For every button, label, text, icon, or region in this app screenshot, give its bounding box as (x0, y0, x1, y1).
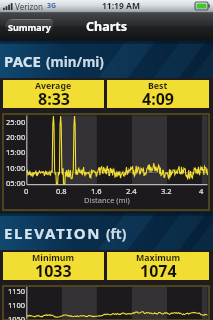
staticText: 3.2 (161, 186, 172, 196)
staticText: 1074 (140, 260, 177, 278)
staticText: 15:00 (6, 147, 26, 157)
staticText: 1033 (35, 260, 72, 278)
staticText: Charts (86, 18, 127, 35)
staticText: 4:09 (142, 88, 174, 106)
button[interactable]: Best (107, 80, 209, 108)
staticText: 10:00 (6, 163, 26, 173)
staticText: 8:33 (38, 88, 70, 106)
staticText: Summary (8, 21, 51, 33)
staticText: Distance (mi) (84, 195, 130, 205)
staticText: ELEVATION (4, 223, 102, 243)
staticText: Best (148, 80, 168, 91)
staticText: 3G (47, 1, 57, 11)
staticText: 1.6 (91, 186, 102, 196)
staticText: 1100 (8, 300, 26, 310)
staticText: 1150 (8, 286, 26, 296)
staticText: (ft) (106, 225, 127, 243)
staticText: 25:00 (6, 117, 26, 127)
staticText: Maximum (136, 252, 181, 263)
staticText: 1050 (8, 314, 26, 320)
staticText: 05:00 (6, 178, 26, 188)
button[interactable]: Summary (5, 19, 53, 34)
staticText: 0 (24, 186, 29, 196)
staticText: Verizon (15, 1, 44, 12)
button[interactable]: Minimum (3, 252, 104, 280)
staticText: Average (35, 80, 72, 91)
staticText: 4 (199, 186, 204, 196)
button[interactable]: Average (3, 80, 104, 108)
staticText: 11:19 AM (102, 0, 140, 12)
staticText: Minimum (32, 252, 75, 263)
staticText: 2.4 (126, 186, 137, 196)
staticText: 0.8 (56, 186, 67, 196)
staticText: PACE (4, 51, 42, 71)
staticText: 20:00 (6, 132, 26, 142)
button[interactable]: Maximum (107, 252, 209, 280)
staticText: (min/mi) (46, 53, 104, 71)
